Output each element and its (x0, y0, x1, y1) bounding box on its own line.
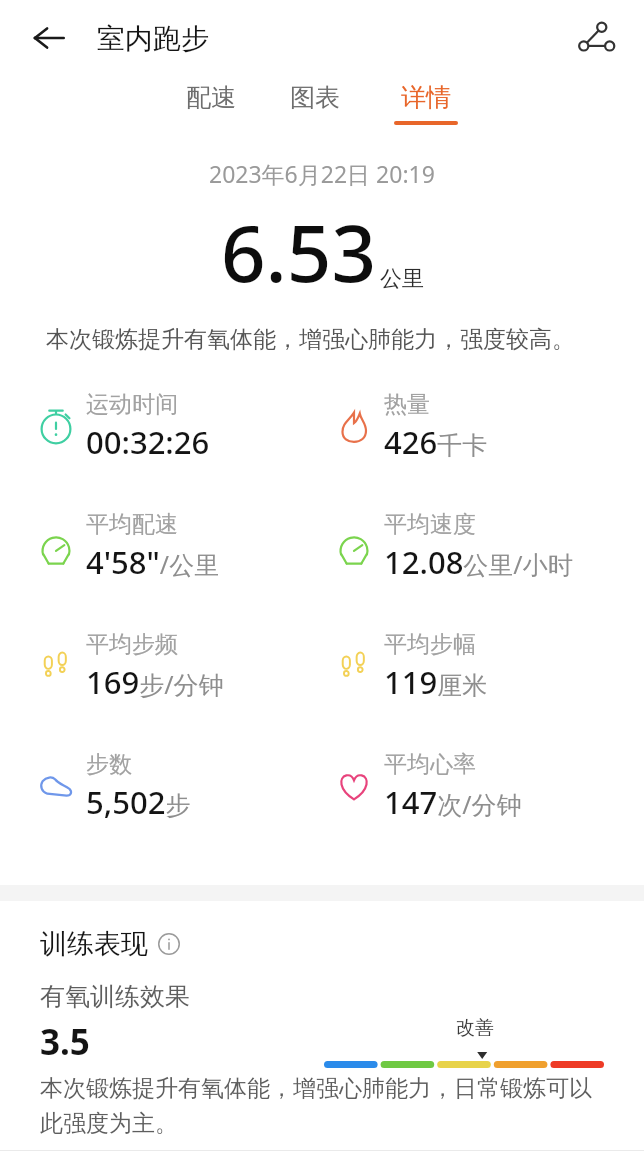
staticText: 有氧训练效果 (40, 981, 190, 1012)
staticText: 12.08公里/小时 (384, 541, 573, 583)
staticText: 119厘米 (384, 661, 488, 703)
button[interactable]: Back (22, 11, 76, 65)
staticText: 4'58"/公里 (86, 541, 220, 583)
staticText: 169步/分钟 (86, 661, 224, 703)
staticText: 本次锻炼提升有氧体能，增强心肺能力，日常锻炼可以此强度为主。 (40, 1074, 604, 1138)
button[interactable]: 平均配速 (0, 486, 322, 606)
button[interactable]: 平均速度 (322, 486, 644, 606)
staticText: 热量 (384, 390, 430, 419)
staticText: 00:32:26 (86, 421, 210, 463)
staticText: 平均速度 (384, 510, 476, 539)
button[interactable]: 热量 (322, 366, 644, 486)
staticText: 平均步幅 (384, 630, 476, 659)
button[interactable]: 训练表现 (40, 927, 181, 961)
staticText: 运动时间 (86, 390, 178, 419)
button[interactable]: 平均步频 (0, 606, 322, 726)
button[interactable]: 步数 (0, 726, 322, 846)
staticText: 详情 (401, 82, 451, 113)
staticText: 2023年6月22日 20:19 (209, 158, 435, 189)
staticText: 5,502步 (86, 781, 191, 823)
staticText: 改善 (456, 1016, 494, 1040)
button[interactable]: 运动时间 (0, 366, 322, 486)
button[interactable]: 详情 (386, 76, 466, 144)
staticText: 训练表现 (40, 927, 148, 961)
staticText: 平均配速 (86, 510, 178, 539)
staticText: 配速 (186, 82, 236, 113)
staticText: 平均心率 (384, 750, 476, 779)
staticText: 步数 (86, 750, 132, 779)
other: Info (157, 932, 181, 956)
staticText: 6.53 (221, 199, 377, 305)
button[interactable]: 平均心率 (322, 726, 644, 846)
button[interactable]: 平均步幅 (322, 606, 644, 726)
button[interactable]: 图表 (282, 76, 348, 144)
staticText: 室内跑步 (97, 21, 209, 56)
staticText: 图表 (290, 82, 340, 113)
staticText: 本次锻炼提升有氧体能，增强心肺能力，强度较高。 (46, 325, 598, 354)
staticText: 公里 (380, 265, 424, 293)
button[interactable]: 配速 (178, 76, 244, 144)
staticText: 平均步频 (86, 630, 178, 659)
staticText: 147次/分钟 (384, 781, 522, 823)
button[interactable]: Share (568, 10, 624, 66)
staticText: 3.5 (40, 1018, 90, 1066)
staticText: 426千卡 (384, 421, 488, 463)
